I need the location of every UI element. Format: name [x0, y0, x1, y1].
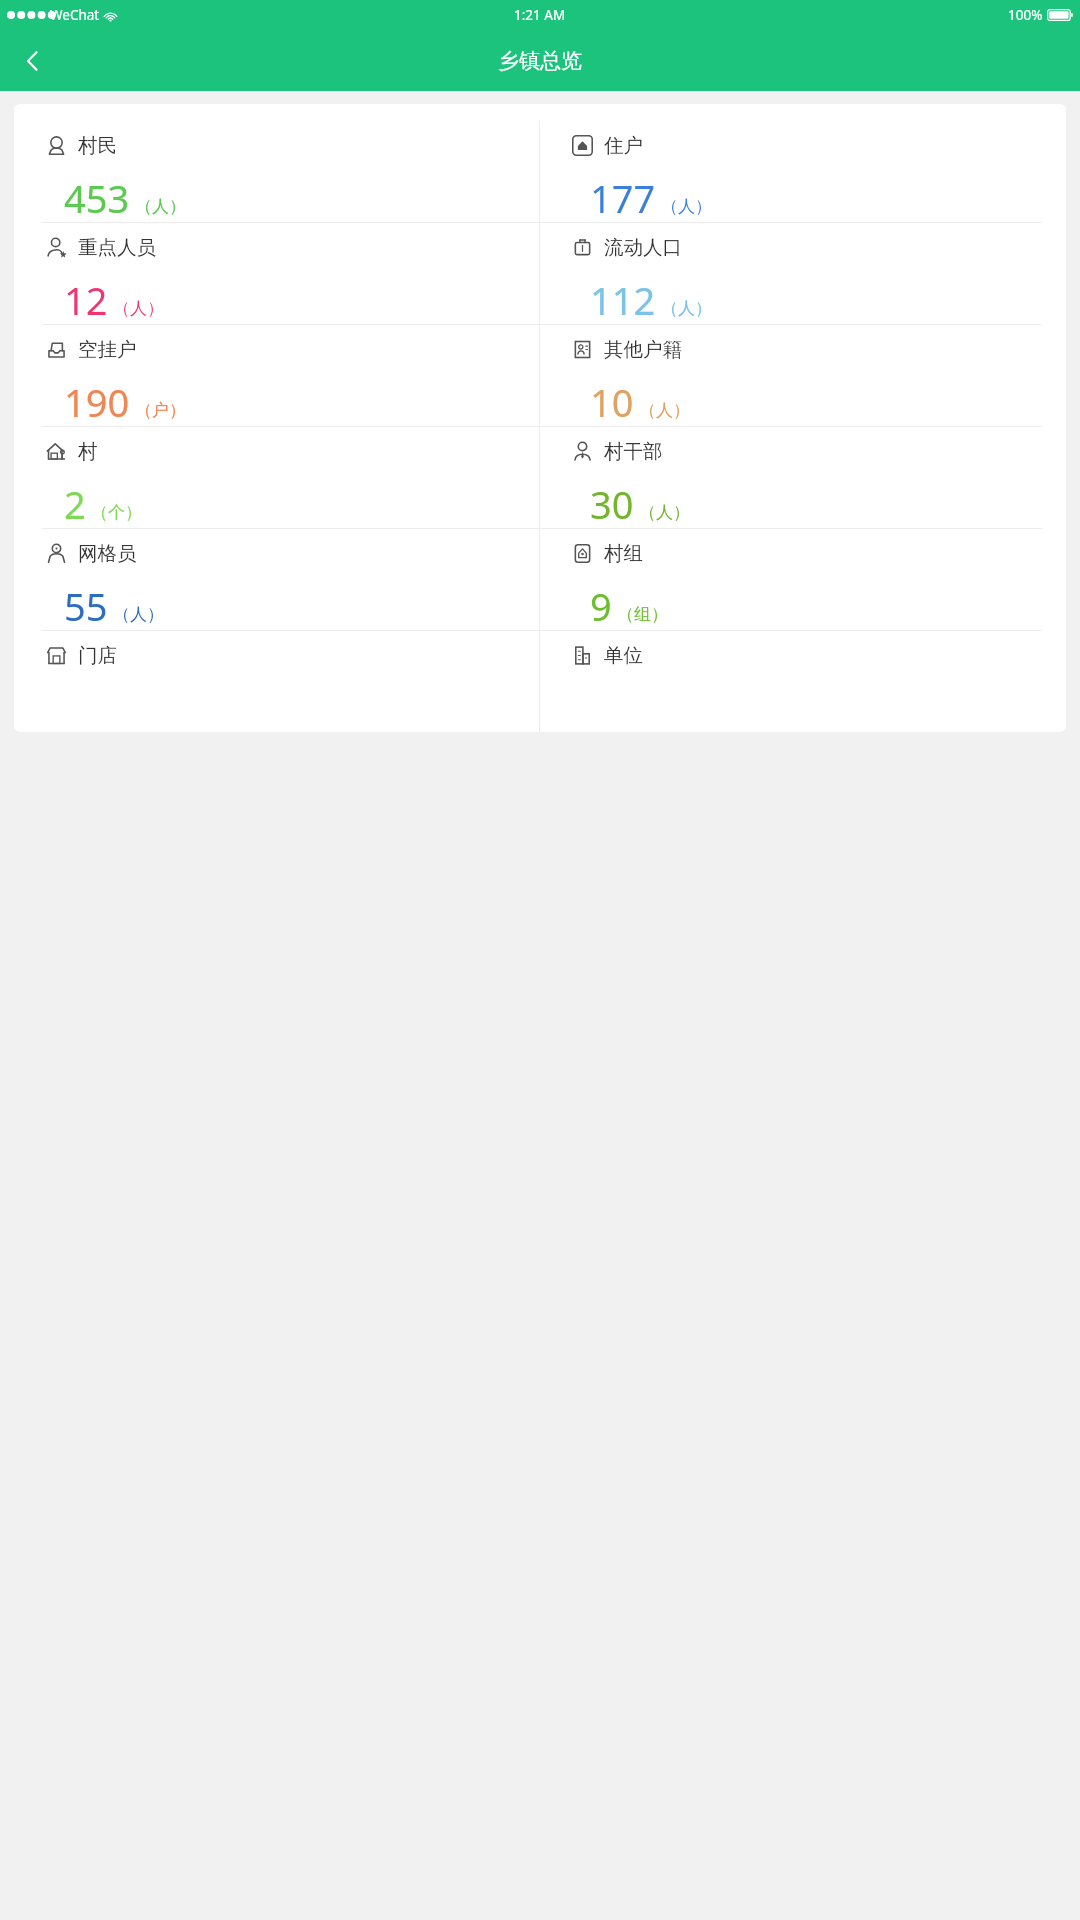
- staticText: 空挂户: [78, 337, 137, 362]
- staticText: 112: [590, 274, 656, 324]
- staticText: 2: [64, 478, 86, 528]
- staticText: 重点人员: [78, 235, 156, 260]
- staticText: 村组: [604, 541, 643, 566]
- staticText: 55: [64, 580, 108, 630]
- staticText: （户）: [135, 400, 186, 421]
- button[interactable]: 村: [14, 427, 539, 528]
- staticText: 单位: [604, 643, 643, 668]
- staticText: 村干部: [604, 439, 663, 464]
- staticText: 住户: [604, 133, 643, 158]
- staticText: （人）: [661, 196, 712, 217]
- button[interactable]: 重点人员: [14, 223, 539, 324]
- button[interactable]: 门店: [14, 631, 539, 732]
- staticText: （个）: [91, 502, 142, 523]
- staticText: 其他户籍: [604, 337, 682, 362]
- staticText: （组）: [617, 604, 668, 625]
- staticText: 流动人口: [604, 235, 682, 260]
- staticText: （人）: [639, 502, 690, 523]
- staticText: （人）: [135, 196, 186, 217]
- staticText: 9: [590, 580, 612, 630]
- staticText: 190: [64, 376, 130, 426]
- button[interactable]: 村民: [14, 121, 539, 222]
- staticText: 门店: [78, 643, 117, 668]
- staticText: 1:21 AM: [514, 6, 566, 24]
- button[interactable]: 单位: [540, 631, 1066, 732]
- staticText: （人）: [113, 604, 164, 625]
- staticText: （人）: [113, 298, 164, 319]
- staticText: 100%: [1008, 6, 1043, 24]
- button[interactable]: 住户: [540, 121, 1066, 222]
- staticText: 10: [590, 376, 634, 426]
- button[interactable]: 村干部: [540, 427, 1066, 528]
- staticText: 177: [590, 172, 656, 222]
- staticText: （人）: [661, 298, 712, 319]
- button[interactable]: 空挂户: [14, 325, 539, 426]
- button[interactable]: 其他户籍: [540, 325, 1066, 426]
- button[interactable]: 村组: [540, 529, 1066, 630]
- button[interactable]: 流动人口: [540, 223, 1066, 324]
- staticText: 453: [64, 172, 130, 222]
- staticText: 网格员: [78, 541, 137, 566]
- button[interactable]: Back: [8, 36, 58, 86]
- staticText: 乡镇总览: [498, 48, 582, 74]
- button[interactable]: 网格员: [14, 529, 539, 630]
- staticText: 12: [64, 274, 108, 324]
- staticText: WeChat: [50, 6, 100, 24]
- staticText: （人）: [639, 400, 690, 421]
- staticText: 30: [590, 478, 634, 528]
- staticText: 村民: [78, 133, 117, 158]
- staticText: 村: [78, 439, 98, 464]
